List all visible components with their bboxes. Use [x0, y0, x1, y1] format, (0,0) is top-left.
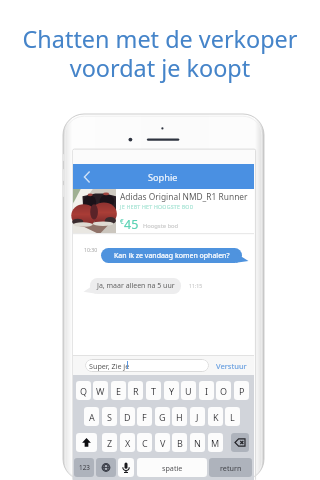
staticText: V: [160, 437, 166, 449]
button[interactable]: N: [190, 433, 205, 452]
button[interactable]: S: [102, 407, 117, 426]
button[interactable]: G: [155, 407, 170, 426]
staticText: C: [142, 437, 148, 449]
staticText: D: [124, 411, 131, 423]
button[interactable]: X: [120, 433, 135, 452]
staticText: N: [194, 437, 201, 449]
staticText: L: [230, 411, 235, 423]
button[interactable]: Super, Zie je: [85, 359, 209, 372]
staticText: W: [96, 385, 105, 397]
button[interactable]: spatie: [137, 458, 207, 477]
staticText: 45: [124, 216, 139, 233]
button[interactable]: F: [137, 407, 152, 426]
button[interactable]: Q: [76, 381, 91, 400]
button[interactable]: return: [209, 458, 252, 477]
staticText: U: [185, 385, 192, 397]
button[interactable]: Dictation: [118, 458, 134, 477]
button[interactable]: Y: [164, 381, 179, 400]
staticText: Q: [80, 385, 88, 397]
staticText: spatie: [162, 463, 183, 473]
button[interactable]: I: [199, 381, 214, 400]
button[interactable]: W: [93, 381, 108, 400]
button[interactable]: J: [190, 407, 205, 426]
staticText: Sophie: [148, 171, 178, 184]
staticText: P: [239, 385, 245, 397]
button[interactable]: M: [208, 433, 223, 452]
staticText: F: [142, 411, 147, 423]
button[interactable]: C: [137, 433, 152, 452]
staticText: K: [213, 411, 219, 423]
button[interactable]: Shift: [76, 433, 97, 452]
button[interactable]: P: [234, 381, 249, 400]
button[interactable]: B: [172, 433, 187, 452]
button[interactable]: D: [120, 407, 135, 426]
staticText: Z: [107, 437, 113, 449]
staticText: G: [159, 411, 166, 423]
button[interactable]: O: [216, 381, 231, 400]
button[interactable]: A: [84, 407, 99, 426]
button[interactable]: V: [155, 433, 170, 452]
staticText: B: [177, 437, 183, 449]
staticText: I: [205, 385, 209, 397]
button[interactable]: H: [172, 407, 187, 426]
button[interactable]: L: [225, 407, 240, 426]
staticText: Super, Zie je: [89, 361, 130, 371]
staticText: Kan ik ze vandaag komen ophalen?: [114, 251, 230, 261]
staticText: 10:30: [84, 246, 98, 253]
button[interactable]: Z: [102, 433, 117, 452]
staticText: A: [89, 411, 95, 423]
staticText: T: [151, 385, 157, 397]
staticText: 123: [79, 463, 90, 472]
staticText: H: [176, 411, 183, 423]
staticText: E: [116, 385, 122, 397]
staticText: Hoogste bod: [143, 222, 179, 230]
staticText: Adidas Original NMD_R1 Runner: [120, 191, 248, 202]
button[interactable]: T: [146, 381, 161, 400]
staticText: 11:15: [189, 282, 203, 289]
button[interactable]: 123: [74, 458, 94, 477]
staticText: S: [107, 411, 112, 423]
button[interactable]: Back: [77, 167, 97, 187]
staticText: Chatten met de verkoper voordat je koopt: [0, 23, 320, 84]
button[interactable]: Switch keyboard: [96, 458, 116, 477]
staticText: JE HEBT HET HOOGSTE BOD: [120, 203, 194, 210]
button[interactable]: K: [208, 407, 223, 426]
button[interactable]: Verstuur: [216, 361, 247, 371]
staticText: M: [211, 437, 220, 449]
button[interactable]: E: [111, 381, 126, 400]
button[interactable]: Backspace: [231, 433, 249, 452]
button[interactable]: R: [128, 381, 143, 400]
staticText: J: [196, 411, 199, 423]
staticText: Ja, maar alleen na 5 uur: [97, 281, 175, 291]
staticText: Y: [169, 385, 175, 397]
staticText: €: [120, 217, 124, 225]
staticText: O: [220, 385, 228, 397]
staticText: X: [125, 437, 131, 449]
staticText: return: [220, 463, 242, 473]
button[interactable]: U: [181, 381, 196, 400]
staticText: R: [133, 385, 139, 397]
